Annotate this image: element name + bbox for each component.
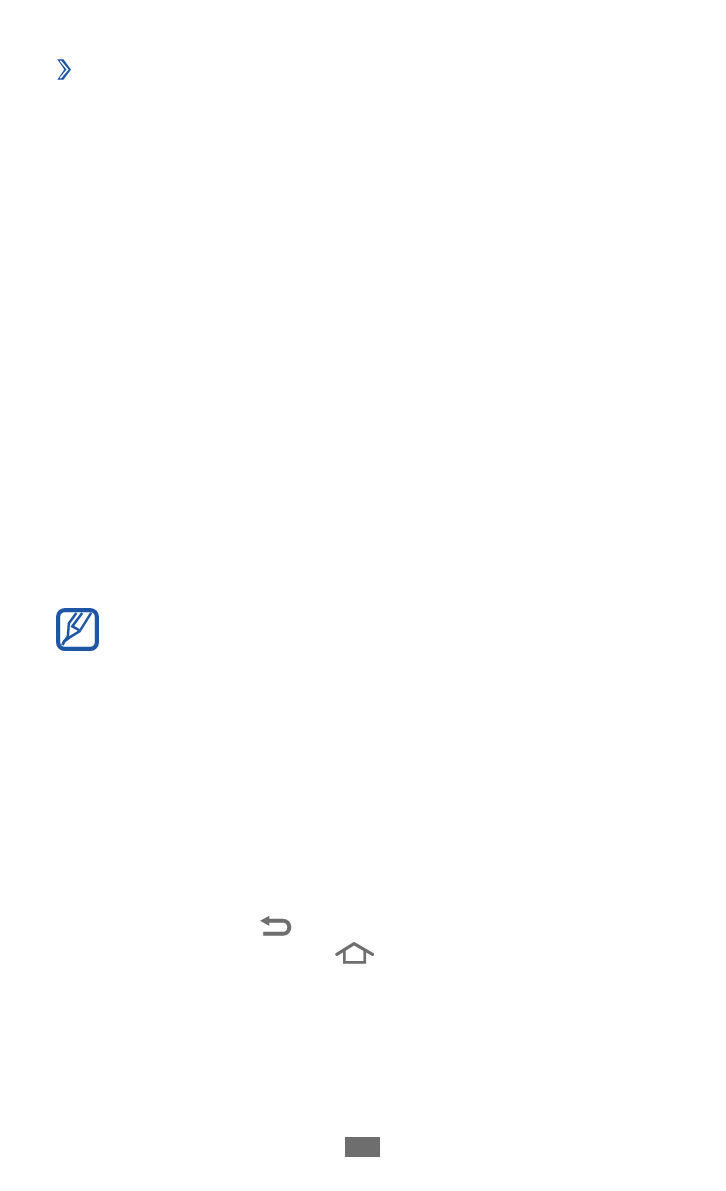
- button[interactable]: Back: [258, 912, 294, 940]
- button[interactable]: Home: [332, 938, 378, 968]
- button[interactable]: Next: [57, 59, 71, 80]
- button[interactable]: Note: [56, 608, 99, 651]
